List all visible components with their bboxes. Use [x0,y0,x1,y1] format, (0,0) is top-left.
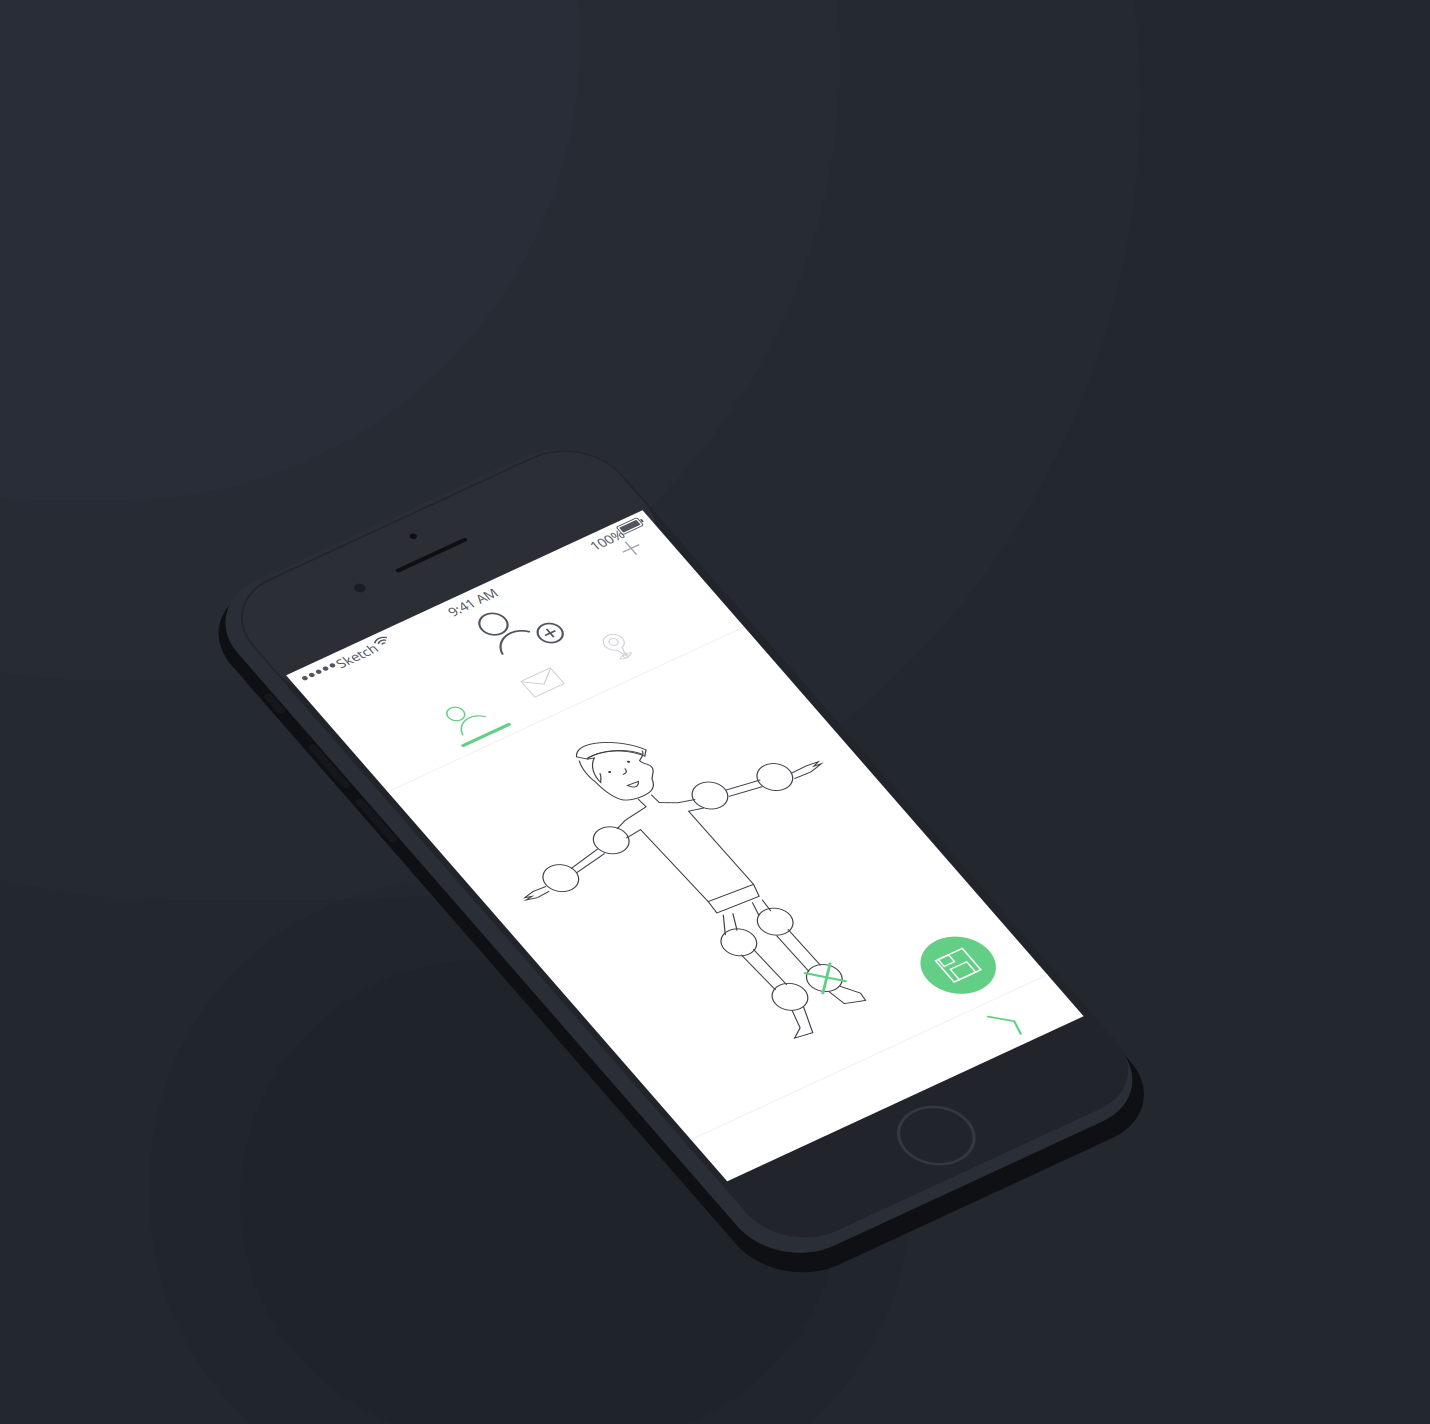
button[interactable]: Save [311,587,383,659]
button[interactable]: Next [332,684,376,732]
